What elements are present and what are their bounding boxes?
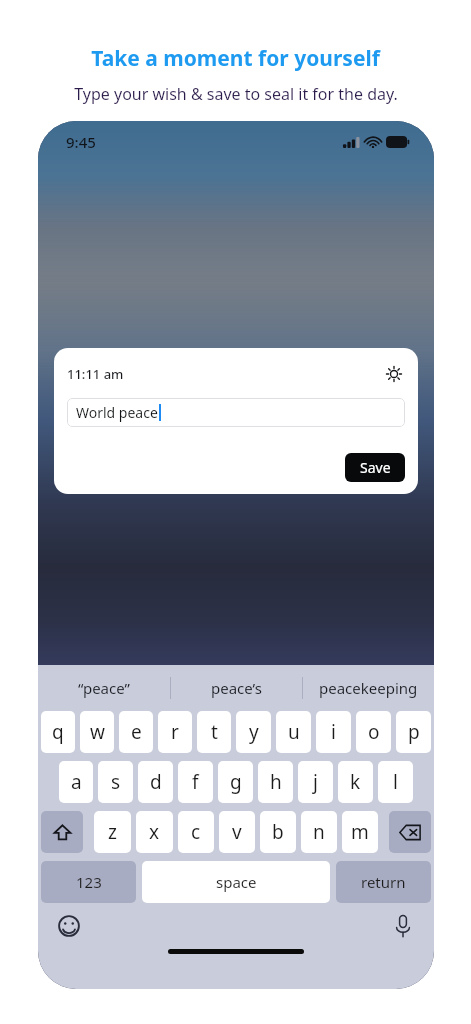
- button[interactable]: i: [316, 711, 351, 753]
- button[interactable]: World peace: [67, 398, 405, 427]
- staticText: w: [90, 719, 105, 745]
- staticText: m: [351, 819, 369, 845]
- staticText: r: [171, 719, 179, 745]
- staticText: World peace: [76, 403, 158, 422]
- staticText: o: [368, 719, 380, 745]
- button[interactable]: q: [41, 711, 75, 753]
- staticText: n: [313, 819, 325, 845]
- staticText: u: [288, 719, 300, 745]
- button[interactable]: f: [178, 761, 213, 803]
- button[interactable]: d: [138, 761, 173, 803]
- staticText: d: [150, 769, 162, 795]
- staticText: b: [272, 819, 284, 845]
- staticText: k: [350, 769, 361, 795]
- button[interactable]: b: [260, 811, 296, 853]
- button[interactable]: 123: [41, 861, 136, 903]
- staticText: 11:11 am: [67, 365, 124, 383]
- staticText: “peace”: [78, 678, 130, 698]
- button[interactable]: v: [219, 811, 255, 853]
- staticText: s: [111, 769, 121, 795]
- button[interactable]: n: [301, 811, 337, 853]
- staticText: 9:45: [66, 132, 96, 152]
- staticText: i: [331, 719, 336, 745]
- staticText: e: [131, 719, 142, 745]
- button[interactable]: j: [298, 761, 333, 803]
- staticText: return: [361, 872, 406, 892]
- staticText: f: [192, 769, 199, 795]
- staticText: c: [191, 819, 201, 845]
- button[interactable]: m: [342, 811, 378, 853]
- button[interactable]: w: [80, 711, 114, 753]
- button[interactable]: u: [276, 711, 311, 753]
- staticText: Take a moment for yourself: [91, 44, 380, 73]
- button[interactable]: a: [59, 761, 93, 803]
- button[interactable]: z: [94, 811, 131, 853]
- button[interactable]: Backspace: [389, 811, 431, 853]
- staticText: p: [408, 719, 420, 745]
- button[interactable]: c: [178, 811, 214, 853]
- button[interactable]: y: [236, 711, 271, 753]
- button[interactable]: t: [197, 711, 231, 753]
- button[interactable]: g: [218, 761, 253, 803]
- staticText: j: [313, 769, 318, 795]
- staticText: peace’s: [211, 678, 262, 698]
- button[interactable]: h: [258, 761, 293, 803]
- button[interactable]: p: [396, 711, 431, 753]
- button[interactable]: r: [158, 711, 192, 753]
- staticText: Type your wish & save to seal it for the…: [74, 83, 398, 105]
- staticText: l: [393, 769, 398, 795]
- staticText: peacekeeping: [319, 678, 418, 698]
- button[interactable]: Emoji: [52, 909, 86, 943]
- button[interactable]: peacekeeping: [303, 665, 434, 711]
- staticText: Save: [360, 458, 391, 477]
- staticText: t: [211, 719, 218, 745]
- button[interactable]: Brightness: [383, 363, 405, 385]
- button[interactable]: e: [119, 711, 153, 753]
- staticText: space: [216, 872, 257, 892]
- staticText: y: [249, 719, 259, 745]
- staticText: g: [230, 769, 242, 795]
- button[interactable]: Shift: [41, 811, 83, 853]
- staticText: z: [108, 819, 117, 845]
- button[interactable]: x: [136, 811, 173, 853]
- button[interactable]: Save: [345, 453, 405, 482]
- staticText: a: [71, 769, 82, 795]
- button[interactable]: Voice input: [386, 909, 420, 943]
- button[interactable]: space: [142, 861, 330, 903]
- button[interactable]: return: [336, 861, 431, 903]
- button[interactable]: o: [356, 711, 391, 753]
- button[interactable]: k: [338, 761, 373, 803]
- button[interactable]: s: [98, 761, 133, 803]
- staticText: 123: [76, 872, 102, 892]
- button[interactable]: “peace”: [38, 665, 170, 711]
- staticText: q: [52, 719, 64, 745]
- button[interactable]: l: [378, 761, 413, 803]
- button[interactable]: peace’s: [171, 665, 302, 711]
- staticText: v: [232, 819, 242, 845]
- staticText: x: [149, 819, 160, 845]
- staticText: h: [270, 769, 282, 795]
